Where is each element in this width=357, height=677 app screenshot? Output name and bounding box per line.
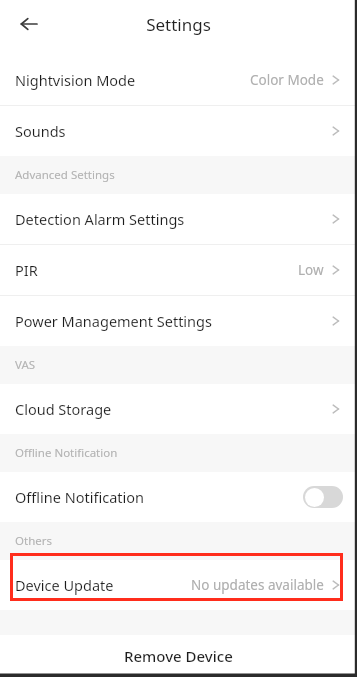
button[interactable]: Cloud Storage xyxy=(0,384,357,434)
staticText: Device Update xyxy=(15,575,114,595)
button[interactable]: Offline Notification xyxy=(0,472,357,522)
staticText: PIR xyxy=(15,260,38,280)
button[interactable]: Detection Alarm Settings xyxy=(0,194,357,244)
button[interactable]: Remove Device xyxy=(0,635,357,677)
button[interactable]: PIR xyxy=(0,245,357,295)
staticText: No updates available xyxy=(191,576,324,594)
staticText: VAS xyxy=(15,357,36,373)
button[interactable]: Power Management Settings xyxy=(0,296,357,346)
staticText: Cloud Storage xyxy=(15,399,112,419)
staticText: Others xyxy=(15,533,52,549)
button[interactable]: Device Update xyxy=(0,560,357,610)
button[interactable]: Sounds xyxy=(0,106,357,156)
staticText: Low xyxy=(298,261,324,279)
staticText: Nightvision Mode xyxy=(15,70,136,90)
button[interactable]: Back xyxy=(12,7,46,41)
staticText: Sounds xyxy=(15,121,66,141)
staticText: Detection Alarm Settings xyxy=(15,209,185,229)
button[interactable]: Nightvision Mode xyxy=(0,55,357,105)
staticText: Offline Notification xyxy=(15,487,144,507)
staticText: Color Mode xyxy=(250,71,324,89)
staticText: Advanced Settings xyxy=(15,167,115,183)
staticText: Settings xyxy=(146,13,211,36)
staticText: Remove Device xyxy=(124,646,233,666)
staticText: Offline Notification xyxy=(15,445,118,461)
staticText: Power Management Settings xyxy=(15,311,212,331)
